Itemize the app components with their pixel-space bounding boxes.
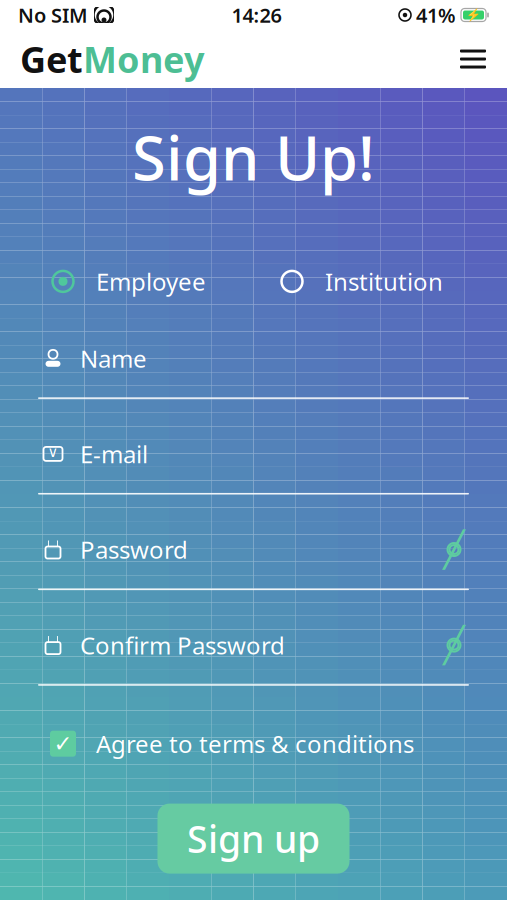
staticText: 41%: [416, 2, 456, 28]
staticText: 14:26: [231, 2, 281, 28]
staticText: Institution: [325, 265, 443, 297]
button[interactable]: Confirm Password: [38, 628, 469, 686]
staticText: Agree to terms & conditions: [96, 728, 414, 760]
staticText: ∨: [47, 444, 58, 460]
staticText: Sign up: [187, 814, 320, 863]
staticText: No SIM: [18, 2, 88, 28]
staticText: Name: [80, 342, 147, 374]
staticText: ✓: [53, 731, 72, 756]
staticText: ╱: [443, 625, 464, 665]
staticText: E-mail: [80, 438, 148, 470]
staticText: Get: [20, 35, 83, 83]
staticText: Password: [80, 534, 188, 565]
staticText: Employee: [96, 265, 206, 297]
staticText: Sign Up!: [132, 116, 375, 197]
button[interactable]: ∨: [38, 437, 469, 494]
button[interactable]: Show password: [439, 536, 469, 562]
staticText: ╱: [443, 530, 464, 569]
button[interactable]: Institution: [279, 265, 443, 297]
staticText: Confirm Password: [80, 629, 285, 661]
button[interactable]: Name: [38, 341, 469, 399]
button[interactable]: Show confirm password: [439, 632, 469, 658]
staticText: ⚡: [466, 8, 481, 22]
button[interactable]: Sign up: [157, 804, 349, 874]
button[interactable]: Password: [38, 532, 469, 590]
button[interactable]: ✓: [0, 728, 507, 760]
button[interactable]: Menu: [451, 37, 495, 81]
button[interactable]: Employee: [50, 265, 206, 297]
staticText: Money: [83, 35, 205, 83]
